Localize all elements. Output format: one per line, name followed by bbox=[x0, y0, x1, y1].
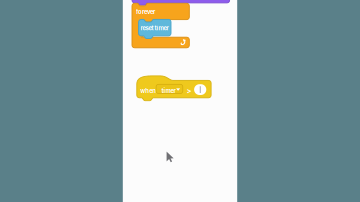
staticText: when bbox=[140, 87, 156, 94]
staticText: reset timer bbox=[141, 24, 169, 32]
button[interactable]: forever block bbox=[0, 0, 360, 202]
button[interactable]: Looks block bbox=[0, 0, 360, 202]
staticText: timer bbox=[161, 87, 175, 94]
staticText: forever bbox=[136, 8, 155, 15]
button[interactable]: when timer greater than block bbox=[0, 0, 360, 202]
button[interactable]: reset timer block bbox=[0, 0, 360, 202]
staticText: > bbox=[187, 86, 192, 95]
